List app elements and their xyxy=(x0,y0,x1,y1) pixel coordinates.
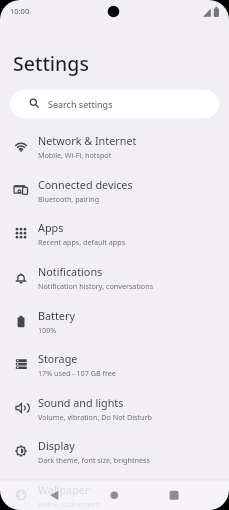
staticText: Recent apps, default apps xyxy=(38,237,126,247)
button[interactable]: Wallpaper xyxy=(0,473,229,510)
staticText: Home, lock screen xyxy=(38,499,100,509)
button[interactable] xyxy=(156,484,201,506)
button[interactable]: Notifications xyxy=(0,255,229,299)
staticText: Display xyxy=(38,438,75,453)
staticText: Bluetooth, pairing xyxy=(38,194,100,204)
staticText: Network & Internet xyxy=(38,133,137,148)
staticText: 17% used - 107 GB free xyxy=(38,368,116,378)
staticText: Storage xyxy=(38,351,78,366)
button[interactable]: Display xyxy=(0,429,229,473)
button[interactable]: Search settings xyxy=(10,90,219,118)
staticText: Notifications xyxy=(38,264,103,279)
staticText: Settings xyxy=(13,50,89,77)
staticText: Apps xyxy=(38,220,64,235)
staticText: Sound and lights xyxy=(38,395,124,410)
staticText: Volume, vibration, Do Not Disturb xyxy=(38,412,152,422)
button[interactable]: Storage xyxy=(0,342,229,386)
button[interactable]: Connected devices xyxy=(0,168,229,212)
staticText: Notification history, conversations xyxy=(38,281,154,291)
button[interactable]: Network & Internet xyxy=(0,124,229,168)
button[interactable]: Apps xyxy=(0,211,229,255)
button[interactable]: Sound and lights xyxy=(0,386,229,430)
staticText: Dark theme, font size, brightness xyxy=(38,455,150,465)
staticText: Wallpaper xyxy=(38,482,90,497)
staticText: 100% xyxy=(38,325,57,335)
button[interactable] xyxy=(98,484,143,506)
staticText: Search settings xyxy=(48,98,113,110)
staticText: Mobile, Wi-Fi, hotspot xyxy=(38,150,112,160)
button[interactable]: Battery xyxy=(0,299,229,343)
staticText: 10:00 xyxy=(10,6,30,16)
staticText: Battery xyxy=(38,308,75,323)
button[interactable] xyxy=(40,484,85,506)
staticText: Connected devices xyxy=(38,177,133,192)
